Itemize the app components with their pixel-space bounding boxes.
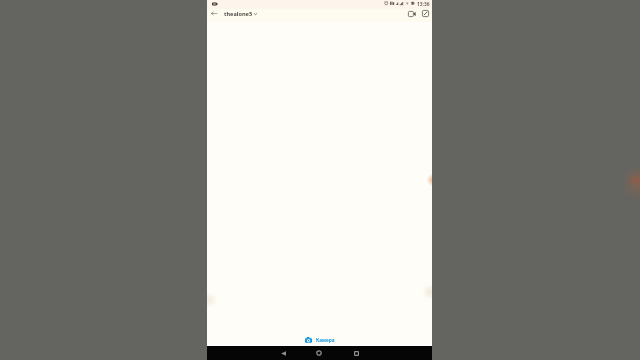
button[interactable]: thealone5 [224, 10, 257, 18]
staticText: 13:36 [417, 1, 430, 8]
button[interactable]: Камера [305, 337, 335, 343]
button[interactable]: Back [277, 347, 289, 359]
button[interactable]: New message [420, 8, 431, 19]
button[interactable]: Back [207, 7, 220, 20]
staticText: Камера [316, 337, 335, 343]
button[interactable]: Home [313, 347, 325, 359]
button[interactable]: Recent apps [350, 347, 362, 359]
staticText: thealone5 [224, 10, 253, 18]
button[interactable]: Video call [406, 8, 417, 19]
